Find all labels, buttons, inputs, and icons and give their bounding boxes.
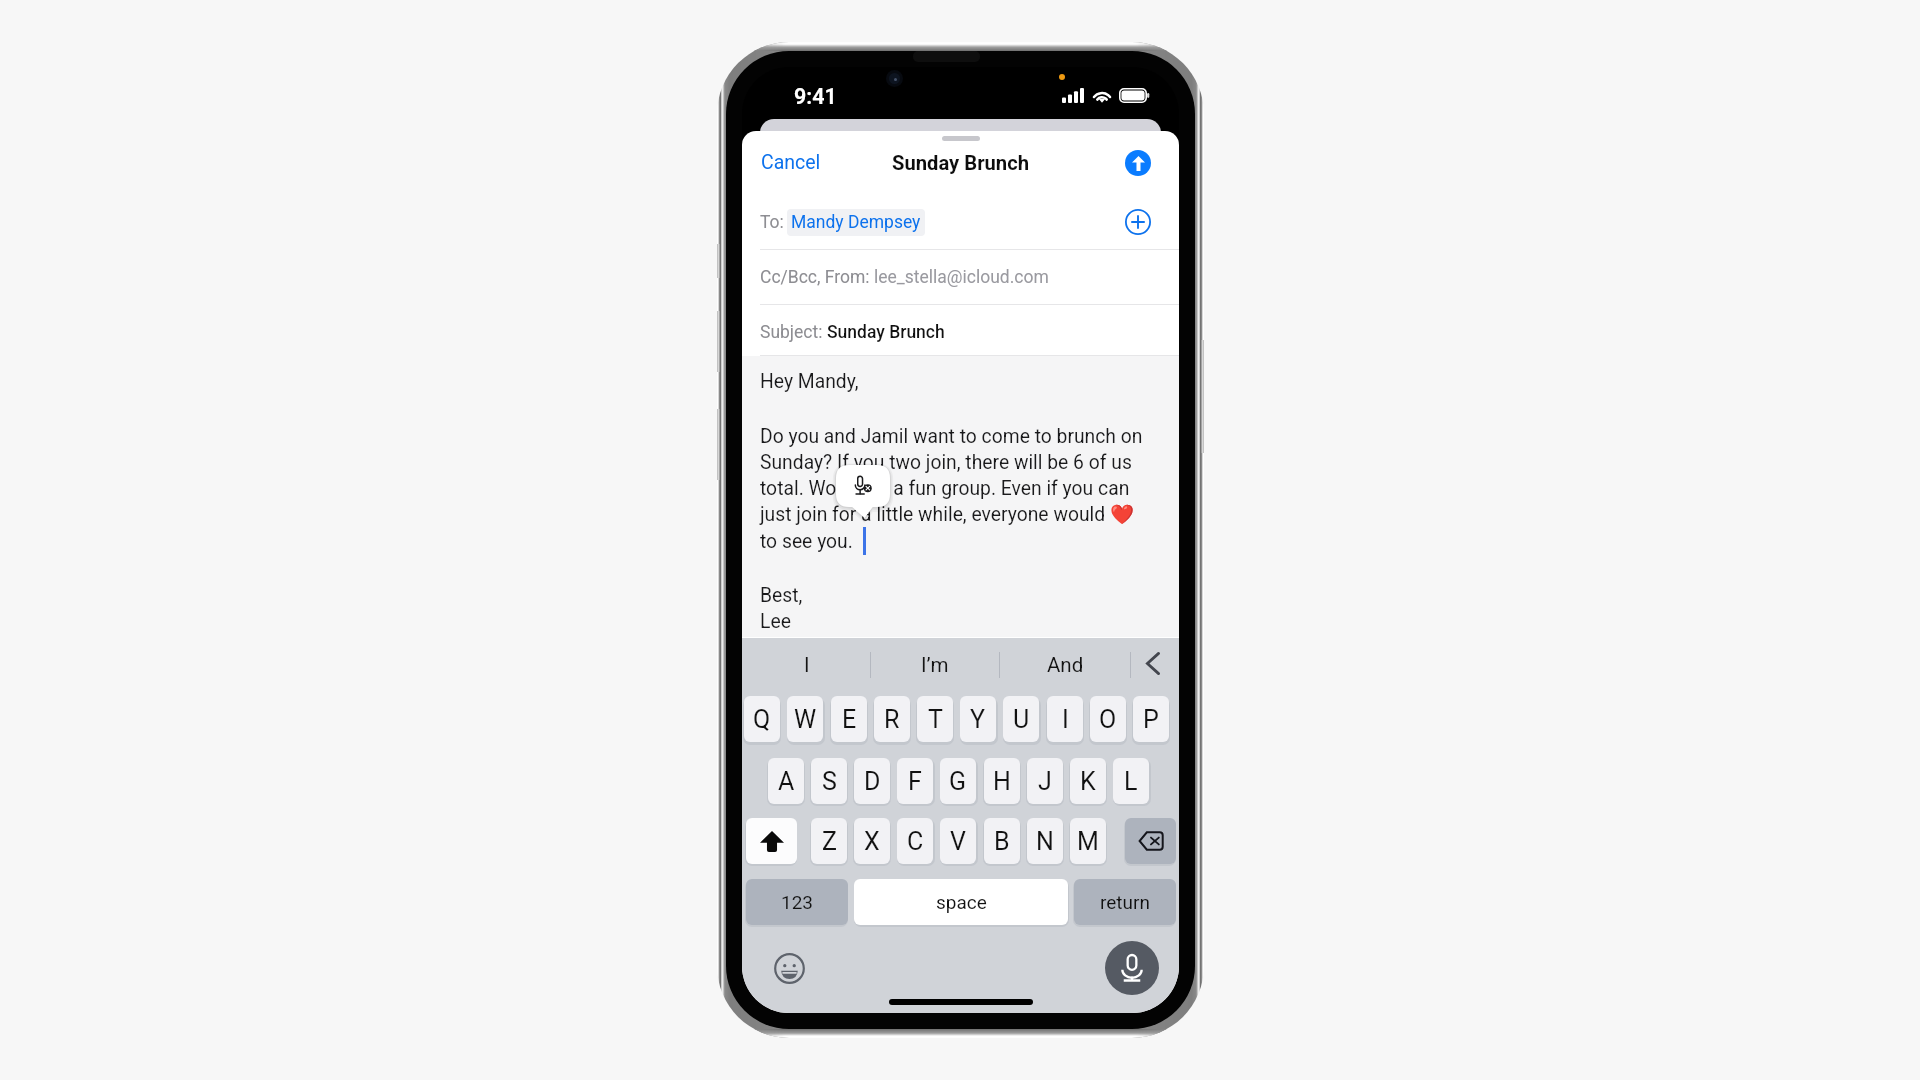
button[interactable]: Add contact — [1125, 209, 1151, 235]
staticText: Q — [753, 705, 771, 734]
staticText: I — [1062, 705, 1069, 734]
button[interactable]: E — [831, 696, 867, 742]
button[interactable]: T — [917, 696, 953, 742]
button[interactable]: To: — [742, 200, 1179, 244]
button[interactable]: F — [897, 758, 933, 804]
staticText: Hey Mandy, — [760, 370, 859, 393]
staticText: K — [1080, 767, 1096, 796]
staticText: L — [1124, 767, 1138, 796]
button[interactable]: O — [1090, 696, 1126, 742]
button[interactable]: B — [984, 818, 1020, 864]
button[interactable]: return — [1074, 879, 1176, 925]
staticText: to see you. — [760, 530, 853, 553]
staticText: I — [804, 653, 810, 677]
button[interactable]: I’m — [871, 643, 999, 687]
staticText: F — [908, 767, 922, 796]
staticText: H — [993, 767, 1011, 796]
staticText: Lee — [760, 610, 791, 633]
staticText: 9:41 — [794, 84, 837, 109]
button[interactable]: I — [1047, 696, 1083, 742]
button[interactable]: H — [984, 758, 1020, 804]
button[interactable]: K — [1070, 758, 1106, 804]
staticText: R — [884, 705, 900, 734]
staticText: C — [907, 827, 924, 856]
staticText: Best, — [760, 584, 803, 607]
button[interactable]: C — [897, 818, 933, 864]
staticText: S — [822, 767, 837, 796]
button[interactable]: X — [854, 818, 890, 864]
button[interactable]: N — [1027, 818, 1063, 864]
button[interactable]: A — [768, 758, 804, 804]
staticText: J — [1038, 767, 1052, 796]
button[interactable]: Subject: — [742, 310, 1179, 354]
button[interactable]: space — [854, 879, 1068, 925]
button[interactable]: G — [940, 758, 976, 804]
staticText: Sunday Brunch — [827, 322, 945, 343]
staticText: Sunday Brunch — [892, 151, 1029, 175]
staticText: X — [864, 827, 880, 856]
staticText: Z — [822, 827, 837, 856]
staticText: U — [1013, 705, 1030, 734]
staticText: D — [864, 767, 881, 796]
staticText: A — [778, 767, 795, 796]
staticText: Subject: — [760, 322, 827, 343]
button[interactable]: Previous suggestion — [1131, 641, 1174, 685]
button[interactable]: Cc/Bcc, From: — [742, 255, 1179, 299]
button[interactable]: D — [854, 758, 890, 804]
button[interactable]: L — [1113, 758, 1149, 804]
staticText: V — [950, 827, 966, 856]
button[interactable]: 123 — [746, 879, 848, 925]
button[interactable]: And — [1001, 643, 1130, 687]
staticText: O — [1099, 705, 1117, 734]
button[interactable]: P — [1133, 696, 1169, 742]
button[interactable]: M — [1070, 818, 1106, 864]
staticText: And — [1047, 653, 1084, 677]
button[interactable]: Z — [811, 818, 847, 864]
staticText: lee_stella@icloud.com — [874, 267, 1049, 288]
button[interactable]: Emoji keyboard — [774, 953, 805, 984]
button[interactable]: Cancel — [742, 140, 1179, 185]
staticText: T — [928, 705, 943, 734]
staticText: N — [1036, 827, 1054, 856]
staticText: G — [949, 767, 967, 796]
staticText: return — [1100, 891, 1150, 913]
staticText: P — [1143, 705, 1159, 734]
staticText: Cancel — [761, 151, 821, 174]
button[interactable]: S — [811, 758, 847, 804]
button[interactable]: V — [940, 818, 976, 864]
staticText: Mandy Dempsey — [791, 212, 921, 233]
button[interactable]: I — [744, 643, 870, 687]
button[interactable]: W — [787, 696, 823, 742]
staticText: just join for a little while, everyone w… — [760, 503, 1134, 526]
staticText: B — [994, 827, 1010, 856]
button[interactable]: Dictate — [1105, 941, 1159, 995]
staticText: To: — [760, 212, 784, 233]
staticText: space — [936, 891, 987, 913]
staticText: E — [842, 705, 857, 734]
staticText: I’m — [921, 653, 949, 677]
staticText: total. Would be a fun group. Even if you… — [760, 477, 1130, 500]
button[interactable]: Backspace — [1125, 818, 1176, 864]
button[interactable]: J — [1027, 758, 1063, 804]
staticText: Sunday? If you two join, there will be 6… — [760, 451, 1132, 474]
staticText: Y — [970, 705, 986, 734]
button[interactable]: Q — [744, 696, 780, 742]
staticText: Do you and Jamil want to come to brunch … — [760, 425, 1143, 448]
staticText: Cc/Bcc, From: — [760, 267, 874, 288]
button[interactable]: U — [1003, 696, 1039, 742]
button[interactable]: Send — [1125, 150, 1151, 176]
staticText: M — [1077, 827, 1099, 856]
staticText: 123 — [781, 891, 814, 913]
button[interactable]: R — [874, 696, 910, 742]
button[interactable]: Y — [960, 696, 996, 742]
staticText: W — [794, 705, 817, 734]
button[interactable]: Shift — [746, 818, 797, 864]
